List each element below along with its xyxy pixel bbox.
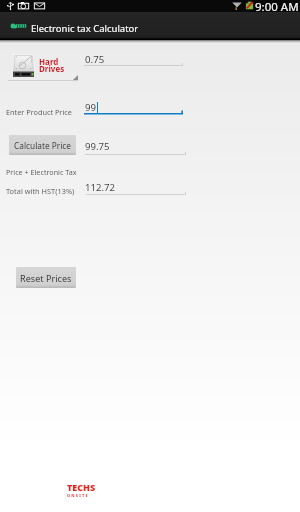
button[interactable]: Total with HST field xyxy=(85,179,186,195)
button[interactable]: Price plus electronic tax field xyxy=(85,138,186,154)
staticText: Total with HST(13%) xyxy=(6,186,75,196)
button[interactable]: Product price input field xyxy=(84,99,183,115)
staticText: 112.72 xyxy=(85,181,116,194)
button[interactable]: Tax rate field xyxy=(84,51,183,67)
staticText: TECHS xyxy=(67,481,96,493)
button[interactable]: Calculate Price xyxy=(9,135,76,155)
staticText: ONSITE xyxy=(67,493,89,498)
staticText: 99 xyxy=(85,101,97,114)
staticText: 99.75 xyxy=(85,140,110,153)
staticText: 9:00 AM xyxy=(255,0,299,11)
button[interactable]: Category spinner: Hard Drives xyxy=(8,45,78,82)
staticText: 0.75 xyxy=(85,53,105,66)
staticText: Enter Product Price xyxy=(6,107,72,117)
staticText: Reset Prices xyxy=(20,272,72,284)
staticText: Calculate Price xyxy=(14,140,72,151)
staticText: Hard Drives xyxy=(39,56,65,75)
button[interactable]: Reset Prices xyxy=(16,267,76,288)
staticText: Electronic tax Calculator xyxy=(31,22,139,35)
staticText: Price + Electronic Tax xyxy=(6,167,77,177)
